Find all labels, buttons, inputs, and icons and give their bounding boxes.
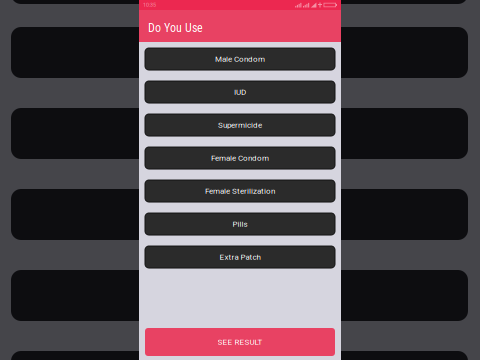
staticText: Pills (232, 219, 247, 229)
staticText: Do You Use (148, 21, 203, 35)
button[interactable]: IUD (145, 81, 335, 103)
staticText: 10:35 (143, 2, 156, 8)
button[interactable]: Extra Patch (145, 246, 335, 268)
staticText: Male Condom (215, 54, 265, 64)
staticText: IUD (234, 87, 246, 97)
staticText: Supermicide (218, 120, 262, 130)
button[interactable]: Female Condom (145, 147, 335, 169)
button[interactable]: SEE RESULT (145, 328, 335, 356)
button[interactable]: Supermicide (145, 114, 335, 136)
button[interactable]: Male Condom (145, 48, 335, 70)
button[interactable]: Female Sterilization (145, 180, 335, 202)
staticText: Female Sterilization (205, 186, 275, 196)
staticText: Female Condom (211, 153, 269, 163)
staticText: SEE RESULT (217, 337, 262, 347)
button[interactable]: Pills (145, 213, 335, 235)
staticText: Extra Patch (219, 252, 260, 262)
